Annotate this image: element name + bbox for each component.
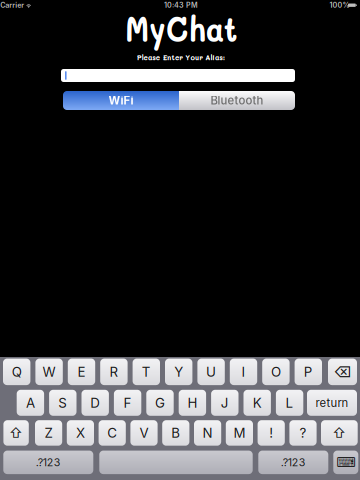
button[interactable]: ? xyxy=(289,420,317,446)
button[interactable]: S xyxy=(49,390,76,416)
button[interactable]: A xyxy=(17,390,44,416)
staticText: N xyxy=(203,425,213,441)
button[interactable]: Y xyxy=(165,359,192,385)
button[interactable]: ⌫ xyxy=(328,359,357,385)
staticText: ⌫ xyxy=(333,363,351,381)
button[interactable]: D xyxy=(81,390,109,416)
staticText: .?123 xyxy=(281,456,306,469)
staticText: U xyxy=(206,364,216,380)
staticText: K xyxy=(253,395,262,411)
staticText: return xyxy=(315,396,348,410)
staticText: A xyxy=(26,395,35,411)
staticText: S xyxy=(58,395,67,411)
button[interactable]: X xyxy=(67,420,94,446)
staticText: Z xyxy=(45,425,53,441)
button[interactable]: ⇧ xyxy=(3,420,29,446)
button[interactable]: O xyxy=(262,359,290,385)
button[interactable]: J xyxy=(211,390,238,416)
button[interactable]: ⌨ xyxy=(333,451,358,474)
button[interactable]: .?123 xyxy=(258,451,328,474)
staticText: D xyxy=(90,395,100,411)
button[interactable]: ⇧ xyxy=(321,420,358,446)
staticText: E xyxy=(77,364,85,380)
button[interactable]: L xyxy=(276,390,303,416)
staticText: Q xyxy=(12,364,22,380)
button[interactable]: R xyxy=(100,359,128,385)
staticText: Please Enter Your Alias: xyxy=(130,51,232,62)
staticText: .?123 xyxy=(36,456,61,469)
button[interactable]: F xyxy=(114,390,141,416)
staticText: V xyxy=(139,425,148,441)
button[interactable]: K xyxy=(243,390,271,416)
staticText: T xyxy=(142,364,151,380)
staticText: X xyxy=(76,425,85,441)
button[interactable]: G xyxy=(146,390,174,416)
button[interactable]: U xyxy=(197,359,225,385)
staticText: G xyxy=(155,395,165,411)
staticText: H xyxy=(187,395,197,411)
button[interactable]: N xyxy=(194,420,221,446)
button[interactable]: V xyxy=(130,420,158,446)
staticText: MyChat xyxy=(116,5,245,51)
staticText: ⇧ xyxy=(9,425,23,441)
staticText: O xyxy=(271,364,281,380)
staticText: F xyxy=(124,395,132,411)
staticText: L xyxy=(286,395,294,411)
staticText: ⇧ xyxy=(332,425,346,441)
staticText: Bluetooth xyxy=(210,94,263,107)
button[interactable]: Q xyxy=(3,359,30,385)
button[interactable] xyxy=(61,69,295,82)
button[interactable]: Bluetooth xyxy=(179,91,295,110)
button[interactable]: return xyxy=(307,390,357,416)
button[interactable]: C xyxy=(99,420,126,446)
button[interactable]: E xyxy=(68,359,95,385)
staticText: 10:43 PM xyxy=(164,1,198,9)
button[interactable]: H xyxy=(179,390,206,416)
staticText: ! xyxy=(269,425,273,441)
button[interactable] xyxy=(99,451,253,474)
staticText: P xyxy=(304,364,313,380)
button[interactable]: P xyxy=(295,359,322,385)
button[interactable]: WiFi xyxy=(63,91,179,110)
staticText: ? xyxy=(299,425,306,441)
staticText: J xyxy=(221,395,229,411)
button[interactable]: T xyxy=(133,359,160,385)
staticText: Y xyxy=(174,364,183,380)
staticText: B xyxy=(171,425,180,441)
staticText: I xyxy=(241,364,245,380)
staticText: M xyxy=(233,425,245,441)
staticText: WiFi xyxy=(108,94,133,107)
button[interactable]: I xyxy=(230,359,257,385)
staticText: C xyxy=(107,425,117,441)
button[interactable]: Z xyxy=(35,420,62,446)
button[interactable]: M xyxy=(226,420,253,446)
staticText: ⌨ xyxy=(336,455,355,470)
button[interactable]: W xyxy=(35,359,63,385)
staticText: W xyxy=(43,364,56,380)
button[interactable]: .?123 xyxy=(3,451,93,474)
staticText: Carrier xyxy=(0,1,24,9)
staticText: R xyxy=(109,364,118,380)
button[interactable]: ! xyxy=(258,420,285,446)
button[interactable]: B xyxy=(162,420,189,446)
staticText: 100% xyxy=(330,1,350,9)
